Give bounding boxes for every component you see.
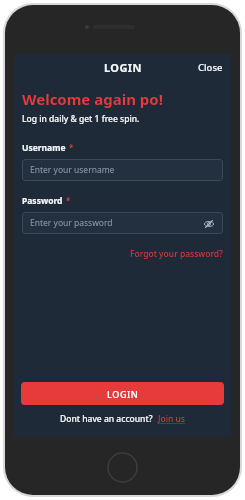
button[interactable]: Join us [158, 413, 185, 425]
button[interactable]: Forgot your password? [130, 246, 223, 262]
staticText: * [66, 195, 71, 206]
button[interactable]: Close [190, 57, 231, 78]
button[interactable]: Enter your password [22, 212, 223, 234]
button[interactable]: Show password [202, 217, 215, 230]
staticText: Log in daily & get 1 free spin. [22, 113, 140, 125]
staticText: Enter your username [30, 164, 115, 176]
staticText: Password [22, 195, 63, 207]
staticText: LOGIN [104, 60, 142, 75]
staticText: Username [22, 142, 66, 154]
staticText: Welcome again po! [22, 89, 163, 109]
button[interactable]: Enter your username [22, 159, 223, 181]
staticText: Close [198, 61, 223, 74]
staticText: Dont have an account? [60, 413, 153, 425]
staticText: Enter your password [30, 217, 113, 229]
staticText: LOGIN [107, 388, 139, 400]
staticText: Forgot your password? [130, 248, 223, 260]
staticText: * [69, 142, 74, 153]
button[interactable]: LOGIN [21, 382, 224, 405]
staticText: Join us [158, 413, 185, 425]
